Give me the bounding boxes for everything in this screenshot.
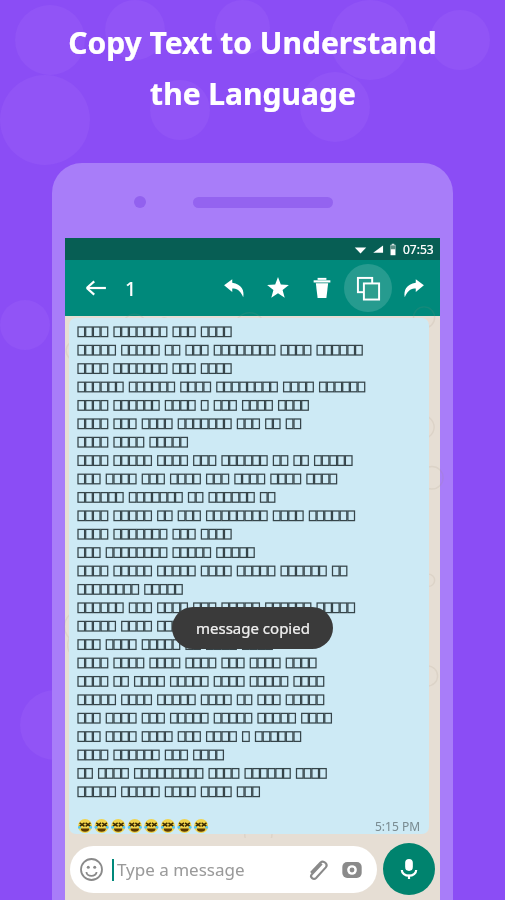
button[interactable]: Emoji	[70, 846, 377, 893]
button[interactable]: Forward	[394, 268, 434, 308]
other: Emoji	[80, 858, 103, 881]
staticText: message copied	[196, 618, 310, 638]
button[interactable]: Voice message	[383, 843, 435, 895]
button[interactable]: Delete	[302, 268, 342, 308]
button[interactable]: Camera	[339, 857, 365, 883]
button[interactable]: 5:15 PM	[69, 318, 429, 834]
button[interactable]: Back	[79, 271, 113, 305]
button[interactable]: Reply	[214, 268, 254, 308]
button[interactable]: Copy	[344, 264, 392, 312]
button[interactable]: Attach	[303, 856, 331, 884]
staticText: 1	[125, 275, 137, 302]
staticText: Copy Text to Understand	[68, 22, 437, 63]
staticText: the Language	[150, 73, 356, 114]
staticText: 07:53	[403, 241, 434, 257]
staticText: Type a message	[117, 858, 245, 881]
staticText: 5:15 PM	[375, 818, 421, 834]
button[interactable]: Star	[258, 268, 298, 308]
